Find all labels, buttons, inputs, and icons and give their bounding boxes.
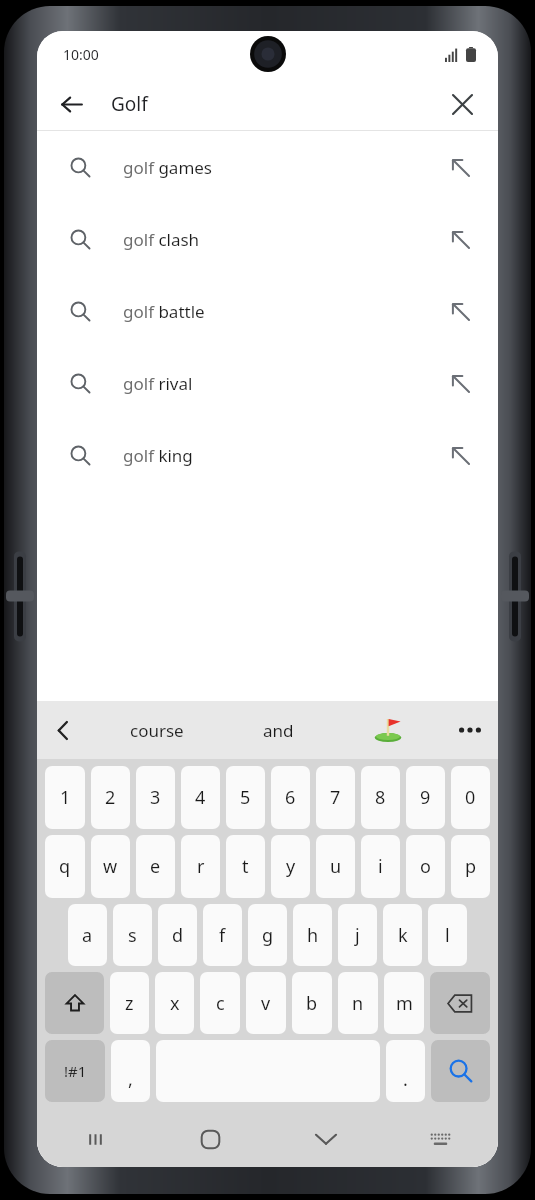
staticText: 6 [285, 785, 296, 810]
button[interactable]: 0 [451, 766, 490, 829]
staticText: golf battle [123, 300, 422, 323]
button[interactable]: a [68, 904, 107, 966]
button[interactable]: Clear search [438, 80, 486, 128]
staticText: golf rival [123, 372, 422, 395]
button[interactable]: i [361, 835, 400, 898]
button[interactable]: g [248, 904, 287, 966]
button[interactable]: 9 [406, 766, 445, 829]
staticText: 7 [330, 785, 341, 810]
button[interactable]: u [316, 835, 355, 898]
staticText: a [82, 923, 93, 948]
button[interactable]: !#1 [45, 1040, 105, 1102]
staticText: g [262, 923, 274, 948]
staticText: course [130, 719, 184, 742]
button[interactable]: Recent apps [37, 1111, 153, 1167]
staticText: y [286, 854, 296, 879]
button[interactable]: Search [431, 1040, 490, 1102]
staticText: 8 [375, 785, 386, 810]
button[interactable]: m [384, 972, 424, 1034]
button[interactable]: Previous [37, 701, 89, 759]
button[interactable]: Hide keyboard [268, 1111, 383, 1167]
staticText: , [128, 1067, 133, 1092]
button[interactable]: c [200, 972, 240, 1034]
staticText: n [352, 991, 364, 1016]
staticText: j [355, 923, 360, 948]
button[interactable]: k [383, 904, 422, 966]
staticText: golf games [123, 156, 422, 179]
staticText: w [103, 854, 118, 879]
button[interactable]: 2 [91, 766, 130, 829]
button[interactable]: Change keyboard [383, 1111, 498, 1167]
staticText: f [219, 923, 226, 948]
staticText: 1 [60, 785, 71, 810]
button[interactable]: Golf emoji [333, 701, 442, 759]
staticText: i [378, 854, 383, 879]
staticText: k [398, 923, 408, 948]
button[interactable]: j [338, 904, 377, 966]
staticText: !#1 [64, 1061, 87, 1081]
button[interactable]: d [158, 904, 197, 966]
staticText: q [59, 854, 71, 879]
button[interactable]: v [246, 972, 286, 1034]
button[interactable]: n [338, 972, 378, 1034]
staticText: u [330, 854, 342, 879]
button[interactable]: q [45, 835, 85, 898]
button[interactable]: y [271, 835, 310, 898]
staticText: Golf [111, 91, 438, 117]
staticText: golf clash [123, 228, 422, 251]
button[interactable]: x [155, 972, 194, 1034]
staticText: 3 [150, 785, 161, 810]
button[interactable]: 3 [136, 766, 175, 829]
button[interactable]: Home [153, 1111, 268, 1167]
button[interactable]: golf games [37, 131, 498, 203]
staticText: z [125, 991, 134, 1016]
staticText: 2 [105, 785, 116, 810]
button[interactable]: e [136, 835, 175, 898]
button[interactable]: golf clash [37, 203, 498, 275]
button[interactable]: 5 [226, 766, 265, 829]
button[interactable]: Back [47, 80, 95, 128]
button[interactable]: , [111, 1040, 150, 1102]
button[interactable]: h [293, 904, 332, 966]
button[interactable]: b [292, 972, 332, 1034]
button[interactable]: and [224, 701, 333, 759]
button[interactable]: s [113, 904, 152, 966]
button[interactable]: golf king [37, 419, 498, 491]
button[interactable]: z [110, 972, 149, 1034]
button[interactable]: Shift [45, 972, 104, 1034]
staticText: r [197, 854, 205, 879]
button[interactable]: r [181, 835, 220, 898]
staticText: 5 [240, 785, 251, 810]
button[interactable]: course [89, 701, 224, 759]
button[interactable]: . [386, 1040, 425, 1102]
button[interactable]: More options [442, 701, 498, 759]
button[interactable]: p [451, 835, 490, 898]
button[interactable]: golf rival [37, 347, 498, 419]
staticText: 4 [195, 785, 206, 810]
staticText: p [465, 854, 477, 879]
staticText: s [128, 923, 137, 948]
staticText: . [403, 1067, 408, 1092]
button[interactable]: o [406, 835, 445, 898]
button[interactable]: 4 [181, 766, 220, 829]
staticText: e [150, 854, 161, 879]
staticText: and [263, 719, 294, 742]
staticText: golf king [123, 444, 422, 467]
staticText: c [216, 991, 225, 1016]
button[interactable]: golf battle [37, 275, 498, 347]
button[interactable]: f [203, 904, 242, 966]
button[interactable]: 7 [316, 766, 355, 829]
button[interactable]: 8 [361, 766, 400, 829]
staticText: l [445, 923, 450, 948]
staticText: t [242, 854, 249, 879]
staticText: 10:00 [63, 45, 99, 64]
staticText: 9 [420, 785, 431, 810]
button[interactable]: t [226, 835, 265, 898]
button[interactable]: Backspace [430, 972, 490, 1034]
button[interactable]: 6 [271, 766, 310, 829]
button[interactable]: l [428, 904, 467, 966]
button[interactable]: w [91, 835, 130, 898]
button[interactable]: 1 [45, 766, 85, 829]
staticText: b [306, 991, 318, 1016]
